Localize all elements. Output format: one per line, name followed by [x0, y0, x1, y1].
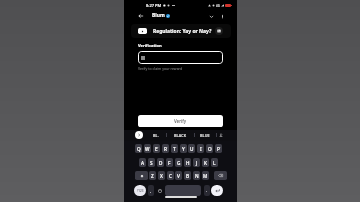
button[interactable]: Collapse	[206, 11, 216, 21]
staticText: Verify	[174, 118, 187, 124]
button[interactable]: BLUE	[195, 130, 215, 141]
button[interactable]: O	[206, 144, 213, 153]
button[interactable]: L	[211, 158, 218, 167]
button[interactable]: W	[144, 144, 151, 153]
staticText: Y	[182, 146, 185, 152]
staticText: 7	[192, 145, 194, 148]
button[interactable]: More options	[217, 11, 227, 21]
staticText: P	[217, 146, 220, 152]
staticText: .	[206, 188, 208, 194]
staticText: 1	[139, 145, 141, 148]
staticText: I	[200, 146, 202, 152]
staticText: Q	[137, 146, 141, 152]
button[interactable]: J	[193, 158, 200, 167]
staticText: S	[150, 160, 153, 166]
staticText: BLACK	[174, 133, 187, 138]
button[interactable]: Show suggestions	[135, 131, 143, 139]
staticText: T	[173, 146, 176, 152]
staticText: 8	[201, 145, 203, 148]
button[interactable]: N	[193, 171, 200, 180]
staticText: Blum	[152, 12, 165, 19]
button[interactable]: Z	[149, 171, 156, 180]
staticText: M	[203, 173, 208, 179]
button[interactable]: C	[167, 171, 174, 180]
button[interactable]: Emoji	[156, 185, 163, 196]
staticText: BLUE	[200, 133, 210, 138]
staticText: W	[145, 146, 150, 152]
staticText: F	[168, 160, 171, 166]
staticText: H	[186, 160, 190, 166]
button[interactable]: Verify	[138, 115, 223, 127]
staticText: 6	[184, 145, 186, 148]
button[interactable]: Regulation: Yay or Nay?	[131, 24, 231, 38]
staticText: BL.	[153, 133, 159, 138]
staticText: 4	[166, 145, 168, 148]
staticText: O	[208, 146, 212, 152]
button[interactable]: BL.	[146, 130, 166, 141]
staticText: ,	[150, 188, 152, 194]
button[interactable]: G	[175, 158, 182, 167]
button[interactable]: A	[139, 158, 146, 167]
staticText: G	[177, 160, 181, 166]
button[interactable]: B	[184, 171, 191, 180]
staticText: C	[169, 173, 172, 179]
staticText: 4G	[216, 4, 220, 8]
button[interactable]: Enter	[211, 185, 223, 196]
button[interactable]: T	[171, 144, 178, 153]
button[interactable]: Symbols	[134, 185, 146, 196]
button[interactable]: M	[202, 171, 209, 180]
button[interactable]: F	[166, 158, 173, 167]
staticText: 2	[148, 145, 150, 148]
staticText: Regulation: Yay or Nay?	[153, 28, 212, 35]
staticText: Verification	[138, 43, 162, 49]
staticText: Verify to claim your reward	[138, 66, 183, 71]
button[interactable]: Shift	[135, 171, 148, 180]
staticText: R	[164, 146, 167, 152]
staticText: N	[195, 173, 199, 179]
button[interactable]: K	[202, 158, 209, 167]
button[interactable]: Back	[136, 11, 146, 21]
button[interactable]: Comma	[148, 185, 154, 196]
button[interactable]: H	[184, 158, 191, 167]
button[interactable]: Verification code field	[138, 51, 223, 64]
button[interactable]: E	[153, 144, 160, 153]
staticText: 0	[219, 145, 221, 148]
staticText: U	[190, 146, 194, 152]
button[interactable]: P	[215, 144, 222, 153]
staticText: E	[155, 146, 158, 152]
button[interactable]: Space	[165, 185, 201, 196]
button[interactable]: D	[157, 158, 164, 167]
button[interactable]: BLACK	[168, 130, 192, 141]
staticText: L	[213, 160, 216, 166]
staticText: 8:27 PM	[146, 3, 162, 8]
button[interactable]: R	[162, 144, 169, 153]
staticText: B	[186, 173, 190, 179]
button[interactable]: Backspace	[214, 171, 227, 180]
staticText: K	[204, 160, 207, 166]
staticText: D	[159, 160, 163, 166]
staticText: 5	[175, 145, 177, 148]
staticText: V	[177, 173, 180, 179]
staticText: 3	[157, 145, 159, 148]
staticText: Z	[151, 173, 154, 179]
staticText: A	[141, 160, 145, 166]
button[interactable]: U	[188, 144, 195, 153]
button[interactable]: Blum channel	[152, 10, 170, 21]
staticText: J	[196, 160, 198, 166]
button[interactable]: V	[175, 171, 182, 180]
staticText: X	[160, 173, 163, 179]
button[interactable]: Period	[204, 185, 210, 196]
button[interactable]: Y	[180, 144, 187, 153]
staticText: ?123	[137, 189, 144, 193]
staticText: 9	[210, 145, 212, 148]
button[interactable]: Q	[135, 144, 142, 153]
button[interactable]: X	[158, 171, 165, 180]
button[interactable]: Download	[217, 131, 225, 139]
button[interactable]: S	[148, 158, 155, 167]
button[interactable]: I	[197, 144, 204, 153]
button[interactable]: Video thumbnail	[215, 27, 223, 35]
